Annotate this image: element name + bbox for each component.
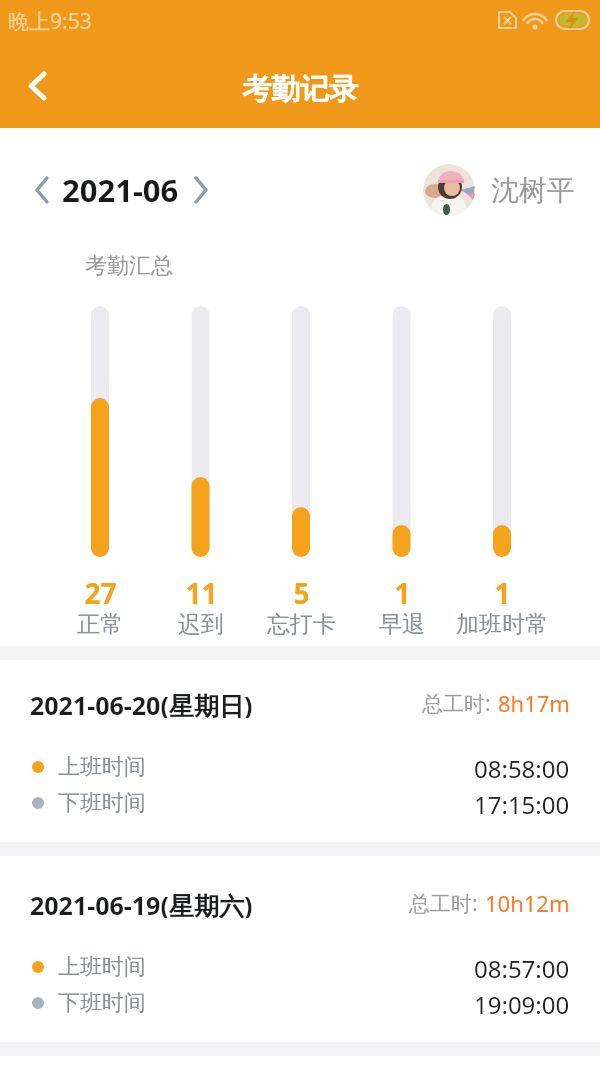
staticText: 忘打卡 <box>267 610 336 638</box>
staticText: 1 <box>494 574 511 608</box>
staticText: 晚上9:53 <box>8 7 92 36</box>
staticText: 下班时间 <box>58 789 146 817</box>
staticText: 08:57:00 <box>474 952 570 982</box>
staticText: 迟到 <box>178 610 224 638</box>
staticText: 2021-06 <box>62 169 179 211</box>
button[interactable] <box>28 176 56 204</box>
staticText: 11 <box>185 574 218 608</box>
staticText: 2021-06-20(星期日) <box>30 688 253 718</box>
staticText: 考勤记录 <box>242 71 358 108</box>
button[interactable] <box>0 54 60 114</box>
staticText: 考勤汇总 <box>85 252 173 280</box>
staticText: 正常 <box>77 610 123 638</box>
button[interactable] <box>187 176 215 204</box>
staticText: 8h17m <box>498 688 570 718</box>
staticText: 19:09:00 <box>474 988 570 1018</box>
staticText: 27 <box>84 574 117 608</box>
staticText: 上班时间 <box>58 753 146 781</box>
staticText: 总工时: <box>422 689 491 718</box>
staticText: 早退 <box>379 610 425 638</box>
staticText: 2021-06-19(星期六) <box>30 888 253 918</box>
staticText: 沈树平 <box>491 173 575 208</box>
button[interactable]: 2021-06-19(星期六) <box>0 856 600 1042</box>
staticText: 总工时: <box>409 889 478 918</box>
button[interactable]: 2021-06-20(星期日) <box>0 660 600 842</box>
staticText: 08:58:00 <box>474 752 570 782</box>
staticText: 17:15:00 <box>474 788 570 818</box>
staticText: 上班时间 <box>58 953 146 981</box>
staticText: 下班时间 <box>58 989 146 1017</box>
staticText: 加班时常 <box>456 610 548 638</box>
staticText: 10h12m <box>485 888 570 918</box>
staticText: 1 <box>394 574 411 608</box>
staticText: 5 <box>293 574 310 608</box>
button[interactable]: 沈树平 <box>423 164 575 216</box>
